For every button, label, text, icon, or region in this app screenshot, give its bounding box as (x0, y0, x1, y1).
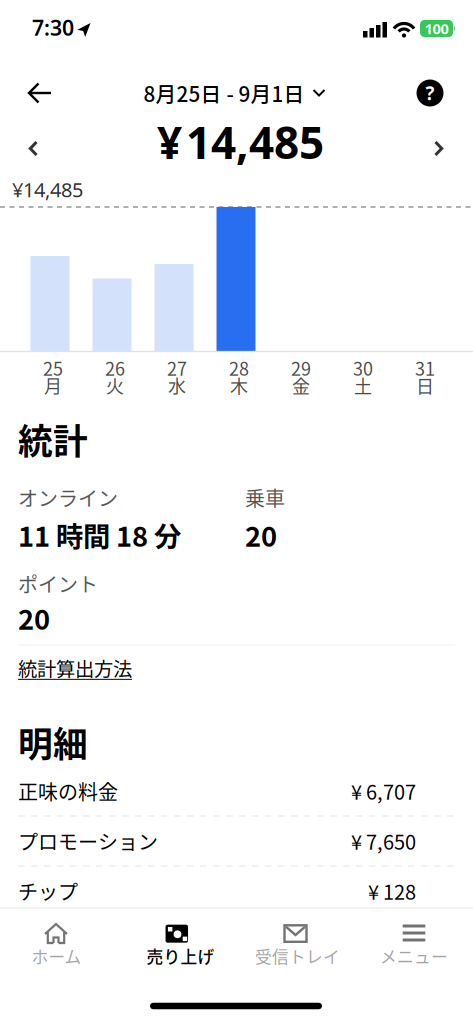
staticText: 月 (44, 372, 62, 399)
staticText: 8月25日 - 9月1日 (143, 78, 304, 108)
staticText: 31 (415, 355, 435, 381)
staticText: ¥ 128 (368, 876, 416, 905)
staticText: ¥ 7,650 (351, 826, 416, 855)
button[interactable]: Help (416, 79, 443, 106)
button[interactable]: 8月25日 - 9月1日 (143, 78, 324, 108)
staticText: 28 (229, 355, 249, 381)
staticText: 26 (105, 355, 125, 381)
staticText: チップ (18, 876, 78, 905)
button[interactable]: Previous week (29, 142, 37, 155)
staticText: ¥ 14,485 (157, 113, 324, 171)
staticText: 100 (424, 19, 448, 38)
staticText: プロモーション (18, 826, 158, 855)
staticText: 統計算出方法 (18, 654, 132, 682)
staticText: ホーム (31, 944, 81, 968)
button[interactable]: 受信トレイ (236, 908, 355, 972)
staticText: ? (425, 81, 434, 105)
staticText: 乗車 (245, 483, 285, 512)
staticText: ポイント (18, 569, 98, 598)
staticText: 日 (416, 372, 434, 399)
staticText: 水 (168, 372, 186, 399)
staticText: 木 (230, 372, 248, 399)
staticText: 明細 (18, 717, 88, 767)
staticText: 20 (18, 598, 50, 638)
staticText: オンライン (18, 483, 118, 512)
staticText: ¥14,485 (12, 176, 83, 203)
button[interactable]: Next week (435, 142, 443, 155)
button[interactable]: 売り上げ (118, 908, 236, 972)
staticText: 売り上げ (146, 944, 214, 968)
staticText: 火 (106, 372, 124, 399)
staticText: 30 (353, 355, 373, 381)
staticText: 20 (245, 515, 277, 555)
staticText: 27 (167, 355, 187, 381)
button[interactable]: Back (22, 83, 58, 102)
button[interactable]: メニュー (355, 908, 473, 972)
staticText: ¥ 6,707 (351, 776, 416, 805)
staticText: 25 (43, 355, 63, 381)
staticText: 統計 (18, 414, 88, 464)
staticText: メニュー (380, 944, 448, 968)
staticText: 土 (354, 372, 372, 399)
staticText: 11 時間 18 分 (18, 515, 181, 555)
button[interactable]: ホーム (0, 908, 118, 972)
staticText: 受信トレイ (255, 944, 340, 968)
staticText: 7:30 (32, 13, 74, 42)
staticText: 29 (291, 355, 311, 381)
button[interactable]: 統計算出方法 (18, 654, 132, 682)
staticText: 金 (292, 372, 310, 399)
staticText: 正味の料金 (18, 776, 118, 805)
